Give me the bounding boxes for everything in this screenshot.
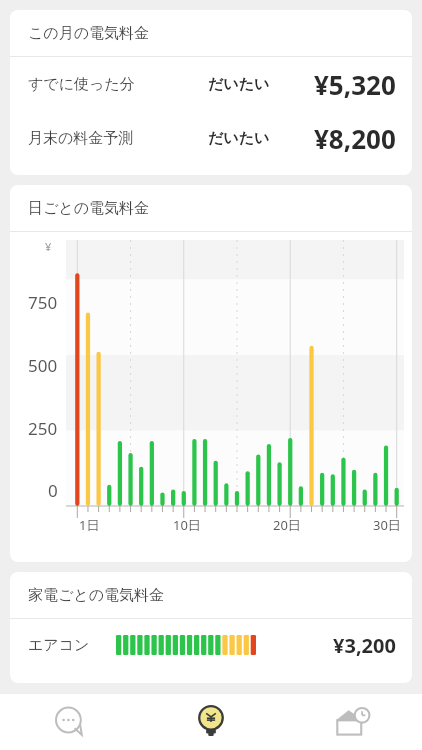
staticText: 日ごとの電気料金	[28, 199, 150, 218]
staticText: 家電ごとの電気料金	[28, 586, 165, 605]
staticText: 750	[28, 291, 58, 314]
staticText: 30日	[373, 516, 401, 534]
button[interactable]: 家電ごとの電気料金	[10, 572, 412, 683]
staticText: ¥8,200	[314, 121, 396, 156]
staticText: 10日	[173, 516, 201, 534]
staticText: だいたい	[208, 129, 270, 148]
button[interactable]: 日ごとの電気料金	[10, 185, 412, 562]
staticText: 500	[28, 354, 58, 377]
staticText: ¥	[45, 239, 52, 254]
staticText: エアコン	[28, 636, 90, 655]
staticText: 20日	[273, 516, 301, 534]
staticText: だいたい	[208, 75, 270, 94]
staticText: この月の電気料金	[28, 24, 150, 43]
button[interactable]: この月の電気料金	[10, 10, 412, 175]
button[interactable]: Messages	[0, 694, 140, 750]
staticText: 250	[28, 417, 58, 440]
staticText: 月末の料金予測	[28, 129, 134, 148]
staticText: 1日	[79, 516, 100, 534]
staticText: ¥3,200	[333, 632, 396, 659]
button[interactable]: Home history	[281, 694, 422, 750]
staticText: 0	[48, 479, 58, 502]
staticText: ¥5,320	[314, 67, 396, 102]
staticText: すでに使った分	[28, 75, 135, 94]
button[interactable]: Electricity cost	[140, 694, 281, 750]
